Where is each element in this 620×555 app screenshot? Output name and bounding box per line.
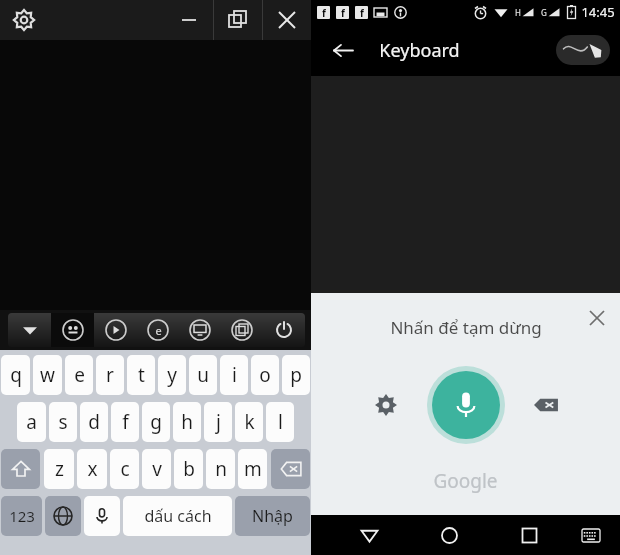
button[interactable]: Gesture typing bbox=[556, 35, 610, 65]
staticText: c bbox=[120, 456, 130, 482]
staticText: z bbox=[55, 456, 64, 482]
button[interactable]: Settings bbox=[363, 382, 409, 428]
staticText: r bbox=[106, 362, 114, 388]
button[interactable]: Back bbox=[349, 515, 389, 555]
button[interactable]: Backspace bbox=[271, 449, 310, 489]
staticText: n bbox=[215, 456, 227, 482]
button[interactable]: p bbox=[282, 355, 310, 395]
staticText: f bbox=[341, 6, 345, 19]
button[interactable]: v bbox=[142, 449, 171, 489]
button[interactable]: z bbox=[44, 449, 74, 489]
staticText: Nhập bbox=[252, 505, 293, 527]
button[interactable]: o bbox=[251, 355, 279, 395]
button[interactable]: Home bbox=[429, 515, 469, 555]
button[interactable]: Browser bbox=[137, 313, 179, 347]
button[interactable]: Monitor bbox=[179, 313, 221, 347]
staticText: w bbox=[40, 362, 55, 388]
button[interactable]: j bbox=[204, 402, 232, 442]
staticText: Nhấn để tạm dừng bbox=[390, 316, 542, 339]
button[interactable]: w bbox=[33, 355, 62, 395]
staticText: p bbox=[290, 362, 302, 388]
button[interactable]: Microphone bbox=[427, 366, 505, 444]
button[interactable]: Copy bbox=[221, 313, 263, 347]
staticText: d bbox=[88, 409, 100, 435]
button[interactable]: x bbox=[77, 449, 107, 489]
button[interactable]: u bbox=[189, 355, 217, 395]
staticText: s bbox=[58, 409, 68, 435]
button[interactable]: l bbox=[266, 402, 294, 442]
staticText: m bbox=[244, 456, 262, 482]
staticText: o bbox=[259, 362, 271, 388]
button[interactable]: close bbox=[263, 0, 311, 40]
staticText: f bbox=[360, 6, 364, 19]
button[interactable]: c bbox=[110, 449, 139, 489]
button[interactable]: Delete bbox=[523, 382, 569, 428]
button[interactable]: e bbox=[65, 355, 93, 395]
button[interactable]: Power bbox=[263, 313, 305, 347]
button[interactable]: Back bbox=[323, 30, 363, 70]
staticText: dấu cách bbox=[144, 505, 212, 527]
staticText: e bbox=[155, 323, 162, 338]
button[interactable]: Nhập bbox=[235, 496, 310, 536]
staticText: k bbox=[244, 409, 255, 435]
button[interactable]: Emoji bbox=[51, 313, 94, 347]
button[interactable]: Language bbox=[45, 496, 81, 536]
button[interactable]: d bbox=[80, 402, 108, 442]
staticText: t bbox=[138, 362, 145, 388]
staticText: q bbox=[10, 362, 22, 388]
staticText: G bbox=[541, 7, 547, 18]
button[interactable]: h bbox=[173, 402, 201, 442]
button[interactable]: g bbox=[142, 402, 170, 442]
button[interactable]: m bbox=[238, 449, 267, 489]
button[interactable]: f bbox=[111, 402, 139, 442]
button[interactable]: Settings bbox=[6, 2, 42, 38]
staticText: H bbox=[515, 7, 521, 18]
button[interactable]: Hide keyboard bbox=[8, 313, 51, 347]
button[interactable]: Play bbox=[94, 313, 137, 347]
button[interactable]: Shift bbox=[1, 449, 40, 489]
staticText: 14:45 bbox=[581, 3, 615, 21]
button[interactable]: 123 bbox=[1, 496, 42, 536]
button[interactable]: i bbox=[220, 355, 248, 395]
staticText: x bbox=[87, 456, 98, 482]
button[interactable]: restore bbox=[214, 0, 262, 40]
button[interactable]: n bbox=[206, 449, 235, 489]
button[interactable]: Close bbox=[580, 301, 614, 335]
button[interactable]: Recents bbox=[509, 515, 549, 555]
staticText: 123 bbox=[9, 506, 35, 526]
staticText: i bbox=[232, 362, 237, 388]
staticText: l bbox=[278, 409, 283, 435]
button[interactable]: r bbox=[96, 355, 124, 395]
staticText: y bbox=[167, 362, 177, 388]
button[interactable]: b bbox=[174, 449, 203, 489]
button[interactable]: q bbox=[1, 355, 30, 395]
staticText: b bbox=[183, 456, 195, 482]
button[interactable]: dấu cách bbox=[123, 496, 232, 536]
button[interactable]: t bbox=[127, 355, 155, 395]
button[interactable]: Switch keyboard bbox=[571, 515, 611, 555]
staticText: a bbox=[26, 409, 37, 435]
button[interactable]: s bbox=[49, 402, 77, 442]
staticText: g bbox=[150, 409, 162, 435]
staticText: v bbox=[152, 456, 162, 482]
staticText: f bbox=[122, 409, 129, 435]
staticText: j bbox=[216, 409, 221, 435]
button[interactable]: min bbox=[165, 0, 213, 40]
staticText: e bbox=[74, 362, 85, 388]
staticText: Keyboard bbox=[379, 38, 460, 63]
staticText: u bbox=[197, 362, 209, 388]
staticText: f bbox=[322, 6, 326, 19]
button[interactable]: k bbox=[235, 402, 263, 442]
staticText: Google bbox=[433, 468, 498, 494]
button[interactable]: Voice input bbox=[84, 496, 120, 536]
staticText: h bbox=[181, 409, 193, 435]
button[interactable]: y bbox=[158, 355, 186, 395]
button[interactable]: a bbox=[17, 402, 46, 442]
